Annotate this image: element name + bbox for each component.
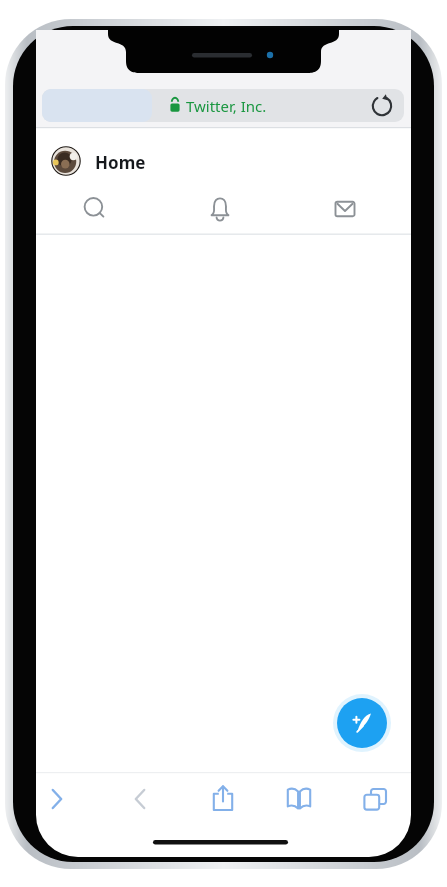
button[interactable]: Address bar: Twitter, Inc.: [42, 89, 404, 122]
button[interactable]: Notifications: [194, 186, 246, 238]
button[interactable]: Home: [90, 143, 180, 179]
button[interactable]: Forward: [118, 776, 164, 822]
button[interactable]: Reload page: [368, 90, 400, 122]
button[interactable]: Search: [69, 186, 121, 238]
button[interactable]: Compose Tweet: [336, 697, 388, 749]
button[interactable]: Profile: [48, 143, 84, 179]
button[interactable]: Back: [36, 776, 82, 822]
button[interactable]: Messages: [319, 186, 371, 238]
staticText: Home: [95, 151, 146, 174]
staticText: Twitter, Inc.: [186, 96, 267, 116]
button[interactable]: Tabs: [352, 776, 398, 822]
button[interactable]: Share: [200, 776, 246, 822]
button[interactable]: Bookmarks: [276, 776, 322, 822]
